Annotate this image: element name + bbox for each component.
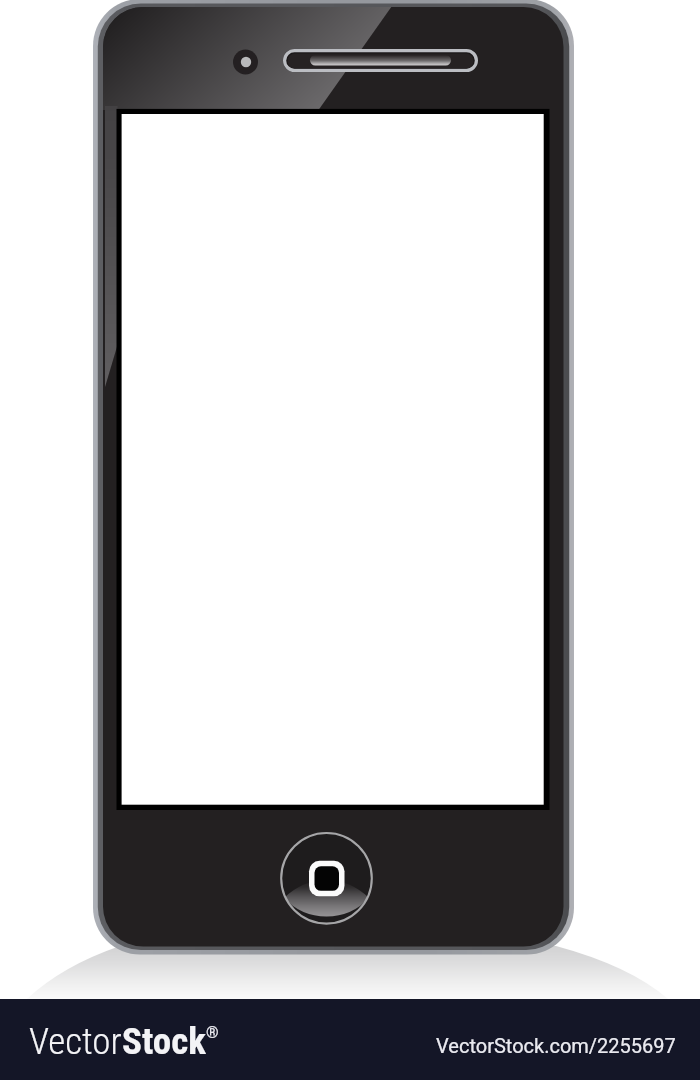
button[interactable]: Vector (29, 1020, 219, 1063)
staticText: Vector (29, 1020, 122, 1063)
staticText: ® (206, 1023, 219, 1042)
button[interactable]: VectorStock.com/2255697 (436, 1034, 676, 1057)
staticText: Stock (122, 1020, 206, 1063)
